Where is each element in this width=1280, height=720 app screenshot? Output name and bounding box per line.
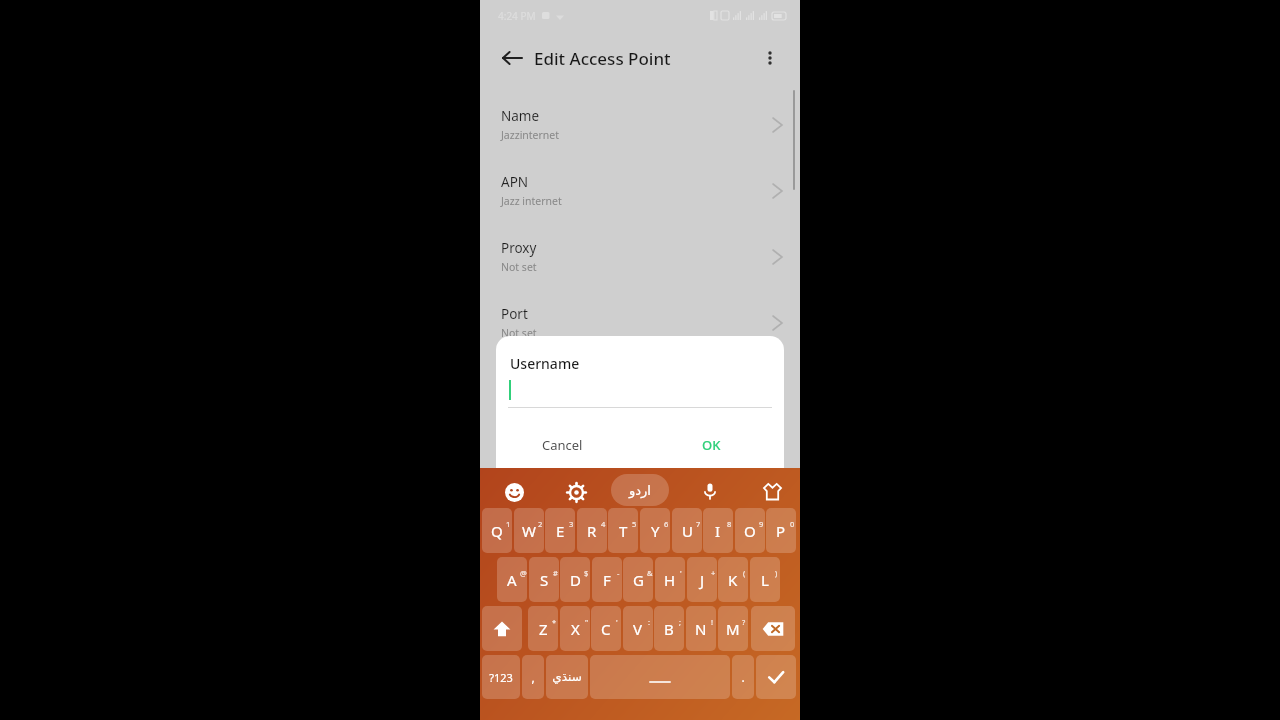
staticText: ' (680, 568, 682, 578)
button[interactable]: R (577, 508, 607, 553)
button[interactable]: I (703, 508, 733, 553)
staticText: : (648, 617, 651, 627)
staticText: ?123 (489, 670, 513, 685)
button[interactable]: N (686, 606, 716, 651)
button[interactable]: . (732, 655, 754, 699)
staticText: & (647, 568, 653, 578)
button[interactable]: L (750, 557, 780, 602)
staticText: Not set (501, 326, 537, 340)
staticText: + (711, 568, 716, 578)
staticText: T (619, 521, 628, 541)
staticText: # (553, 568, 558, 578)
button[interactable]: C (591, 606, 621, 651)
staticText: 0 (790, 519, 795, 529)
button[interactable]: Enter (756, 655, 796, 699)
button[interactable]: B (654, 606, 684, 651)
staticText: A (507, 570, 517, 590)
staticText: L (761, 570, 769, 590)
button[interactable]: Space (590, 655, 730, 699)
button[interactable]: G (623, 557, 653, 602)
button[interactable]: اردو (611, 474, 669, 506)
staticText: APN (501, 173, 529, 191)
button[interactable]: , (522, 655, 544, 699)
staticText: 4 (601, 519, 606, 529)
button[interactable]: K (718, 557, 748, 602)
staticText: اردو (629, 483, 651, 498)
staticText: 5 (632, 519, 637, 529)
button[interactable]: H (655, 557, 685, 602)
button[interactable]: Shift (482, 606, 522, 651)
staticText: " (585, 617, 589, 627)
button[interactable]: Proxy (480, 214, 800, 280)
staticText: 1 (506, 519, 511, 529)
staticText: ! (711, 617, 714, 627)
staticText: , (531, 669, 535, 685)
button[interactable]: S (529, 557, 559, 602)
staticText: Q (491, 521, 503, 541)
staticText: 8 (727, 519, 732, 529)
staticText: K (728, 570, 738, 590)
staticText: H (664, 570, 676, 590)
staticText: * (552, 617, 557, 627)
staticText: 4:24 PM (498, 9, 536, 23)
staticText: OK (702, 436, 721, 454)
staticText: 3 (569, 519, 574, 529)
button[interactable]: APN (480, 148, 800, 214)
staticText: ) (775, 568, 778, 578)
button[interactable]: O (735, 508, 765, 553)
button[interactable]: D (560, 557, 590, 602)
button[interactable]: Backspace (751, 606, 795, 651)
button[interactable]: J (687, 557, 717, 602)
button[interactable]: E (545, 508, 575, 553)
staticText: W (522, 521, 536, 541)
button[interactable]: Back (492, 38, 532, 78)
button[interactable]: Port (480, 280, 800, 346)
staticText: C (601, 619, 611, 639)
button[interactable]: Theme (760, 479, 784, 503)
button[interactable]: U (672, 508, 702, 553)
button[interactable]: W (514, 508, 544, 553)
staticText: J (700, 570, 705, 590)
staticText: سنڌي (552, 670, 582, 684)
staticText: Port (501, 305, 528, 323)
button[interactable]: ?123 (482, 655, 520, 699)
staticText: X (571, 619, 580, 639)
button[interactable]: More options (750, 38, 790, 78)
button[interactable]: Settings (564, 480, 588, 504)
staticText: Jazzinternet (501, 128, 560, 142)
staticText: Edit Access Point (534, 47, 671, 70)
button[interactable]: Name (480, 86, 800, 148)
button[interactable]: Emoji (502, 480, 526, 504)
staticText: Y (651, 521, 660, 541)
staticText: ? (742, 617, 746, 627)
staticText: O (744, 521, 756, 541)
staticText: . (741, 669, 745, 685)
button[interactable]: Voice input (698, 479, 722, 503)
staticText: P (776, 521, 786, 541)
staticText: R (587, 521, 597, 541)
button[interactable]: F (592, 557, 622, 602)
staticText: U (682, 521, 693, 541)
button[interactable]: A (497, 557, 527, 602)
staticText: 2 (538, 519, 543, 529)
staticText: $ (584, 568, 589, 578)
button[interactable]: OK (692, 432, 731, 458)
staticText: ' (616, 617, 618, 627)
button[interactable]: V (623, 606, 653, 651)
button[interactable]: X (560, 606, 590, 651)
button[interactable]: سنڌي (546, 655, 588, 699)
button[interactable]: P (766, 508, 796, 553)
button[interactable]: Z (528, 606, 558, 651)
staticText: Jazz internet (501, 194, 562, 208)
staticText: Proxy (501, 239, 537, 257)
button[interactable]: Y (640, 508, 670, 553)
staticText: M (726, 619, 740, 639)
button[interactable]: Q (482, 508, 512, 553)
staticText: I (715, 521, 721, 541)
staticText: - (617, 568, 620, 578)
button[interactable]: Cancel (532, 432, 593, 458)
staticText: 6 (664, 519, 669, 529)
staticText: Cancel (542, 436, 583, 454)
button[interactable]: T (608, 508, 638, 553)
button[interactable]: M (718, 606, 748, 651)
